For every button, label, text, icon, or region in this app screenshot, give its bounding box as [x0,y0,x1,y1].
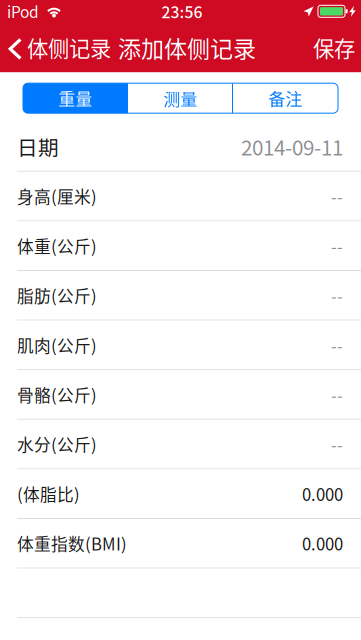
button[interactable]: 体重指数(BMI) [0,519,361,569]
staticText: 脂肪(公斤) [17,283,97,307]
button[interactable]: 测量 [128,83,233,113]
staticText: 体侧记录 [27,32,111,63]
staticText: 添加体侧记录 [118,31,256,64]
button[interactable]: 重量 [23,83,128,113]
staticText: 2014-09-11 [241,131,343,161]
staticText: 重量 [58,86,92,110]
staticText: 身高(厘米) [17,184,97,208]
button[interactable]: 备注 [233,83,338,113]
staticText: -- [331,432,343,456]
button[interactable]: 体侧记录 [0,23,118,72]
button[interactable]: 日期 [0,122,361,172]
button[interactable]: 保存 [299,23,361,72]
staticText: 骨骼(公斤) [17,382,97,406]
staticText: -- [331,283,343,307]
button[interactable]: 水分(公斤) [0,420,361,469]
staticText: (体脂比) [17,482,80,506]
staticText: 保存 [313,32,355,63]
staticText: 体重(公斤) [17,234,97,258]
button[interactable]: 身高(厘米) [0,172,361,221]
button[interactable]: (体脂比) [0,469,361,519]
staticText: 0.000 [302,482,343,506]
staticText: 23:56 [161,0,202,23]
staticText: iPod [7,0,39,22]
button[interactable]: 肌肉(公斤) [0,321,361,370]
button[interactable]: 骨骼(公斤) [0,370,361,420]
button[interactable] [0,569,361,618]
staticText: 日期 [17,131,59,161]
staticText: 肌肉(公斤) [17,333,97,357]
staticText: 0.000 [302,531,343,555]
staticText: -- [331,382,343,406]
staticText: 备注 [268,86,302,110]
button[interactable]: 体重(公斤) [0,221,361,271]
staticText: 水分(公斤) [17,432,97,456]
staticText: -- [331,333,343,357]
staticText: -- [331,234,343,258]
staticText: 测量 [163,86,197,110]
staticText: -- [331,184,343,208]
button[interactable]: 脂肪(公斤) [0,271,361,321]
staticText: 体重指数(BMI) [17,531,127,555]
